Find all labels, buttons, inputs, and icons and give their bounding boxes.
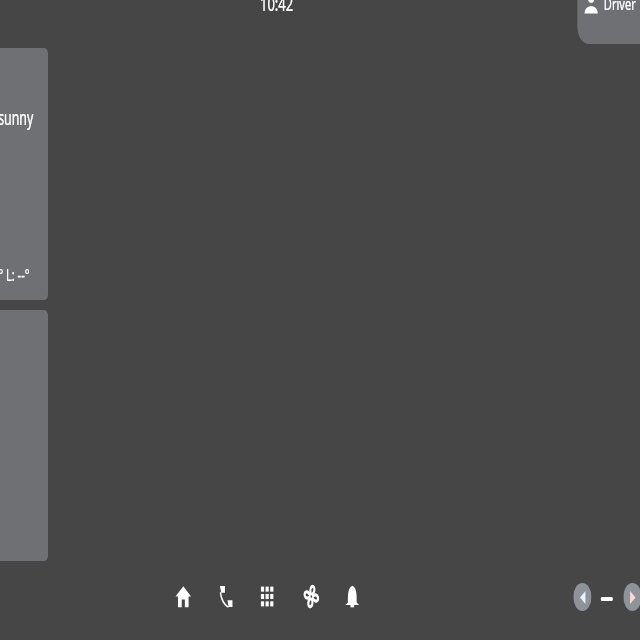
button[interactable]: Forward [623,583,640,611]
button[interactable]: Mostly sunny [0,48,48,300]
button[interactable]: Driver [577,0,640,44]
staticText: H: --° L: --° [0,263,30,286]
staticText: Driver [604,0,636,15]
button[interactable]: Home [162,570,204,622]
staticText: Mostly sunny [0,105,34,131]
button[interactable]: Phone [205,570,246,622]
button[interactable]: Climate [290,570,332,622]
button[interactable]: Home [601,597,613,601]
button[interactable]: Back [573,583,591,611]
staticText: 10:42 [260,0,294,17]
button[interactable]: Notifications [331,570,373,622]
button[interactable]: Apps [246,570,288,622]
